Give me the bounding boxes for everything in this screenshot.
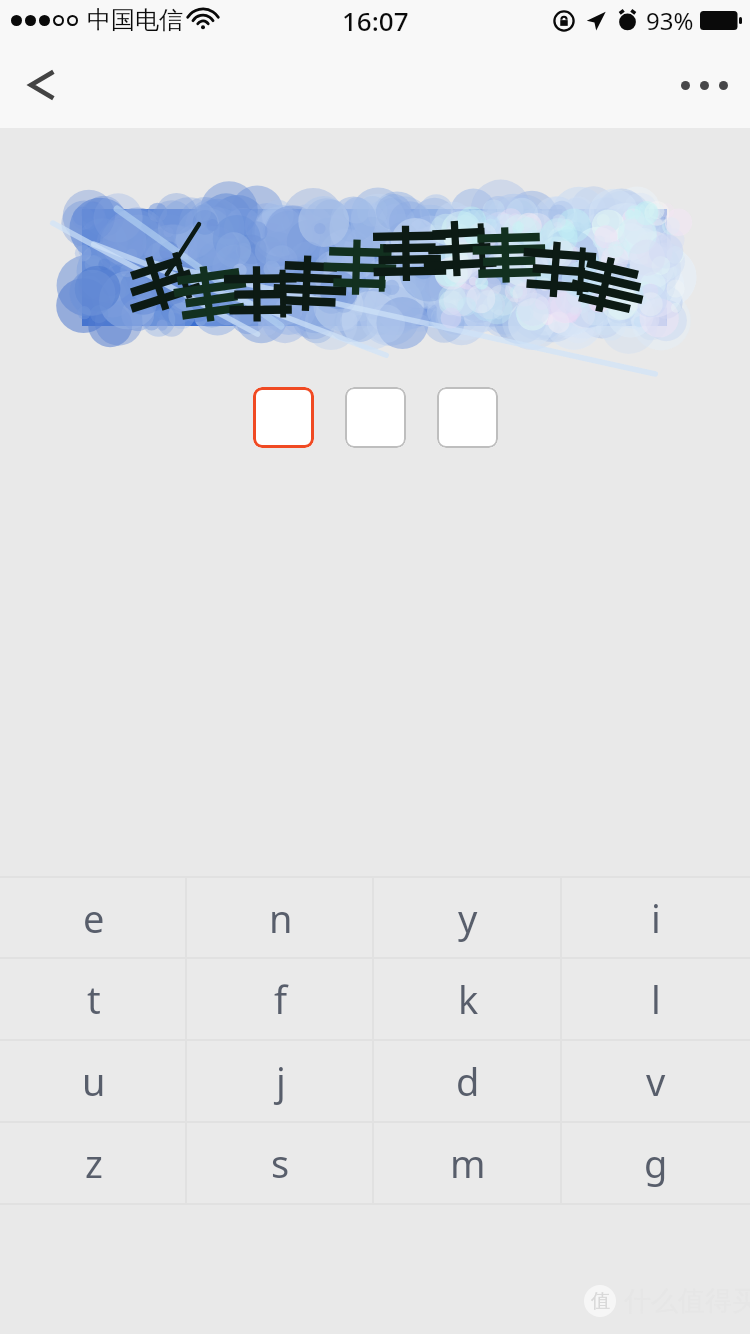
button[interactable]: g xyxy=(562,1123,750,1203)
button[interactable]: s xyxy=(187,1123,374,1203)
button[interactable]: Back xyxy=(10,55,70,115)
staticText: s xyxy=(271,1137,290,1189)
button[interactable]: u xyxy=(0,1041,187,1121)
staticText: j xyxy=(276,1055,286,1107)
staticText: t xyxy=(87,973,101,1025)
staticText: g xyxy=(644,1137,668,1189)
button[interactable]: Captcha character input xyxy=(437,387,498,448)
staticText: u xyxy=(82,1055,106,1107)
staticText: m xyxy=(450,1137,486,1189)
button[interactable]: Captcha character input xyxy=(345,387,406,448)
button[interactable]: v xyxy=(562,1041,750,1121)
button[interactable]: More options xyxy=(676,57,732,113)
staticText: n xyxy=(269,892,293,944)
staticText: d xyxy=(456,1055,480,1107)
staticText: v xyxy=(646,1055,666,1107)
staticText: 中国电信 xyxy=(87,5,183,35)
button[interactable]: d xyxy=(374,1041,562,1121)
button[interactable]: i xyxy=(562,878,750,957)
button[interactable]: Captcha character input xyxy=(253,387,314,448)
staticText: k xyxy=(458,973,479,1025)
button[interactable]: j xyxy=(187,1041,374,1121)
button[interactable]: k xyxy=(374,959,562,1039)
staticText: i xyxy=(651,892,661,944)
button[interactable]: z xyxy=(0,1123,187,1203)
button[interactable]: e xyxy=(0,878,187,957)
staticText: f xyxy=(274,973,288,1025)
staticText: z xyxy=(85,1137,103,1189)
button[interactable]: t xyxy=(0,959,187,1039)
staticText: y xyxy=(458,892,478,944)
button[interactable]: m xyxy=(374,1123,562,1203)
staticText: 值 xyxy=(591,1289,610,1313)
staticText: 16:07 xyxy=(342,3,409,38)
button[interactable]: n xyxy=(187,878,374,957)
staticText: e xyxy=(83,892,105,944)
button[interactable]: l xyxy=(562,959,750,1039)
button[interactable]: f xyxy=(187,959,374,1039)
staticText: 93% xyxy=(646,4,694,37)
staticText: l xyxy=(651,973,661,1025)
button[interactable]: y xyxy=(374,878,562,957)
